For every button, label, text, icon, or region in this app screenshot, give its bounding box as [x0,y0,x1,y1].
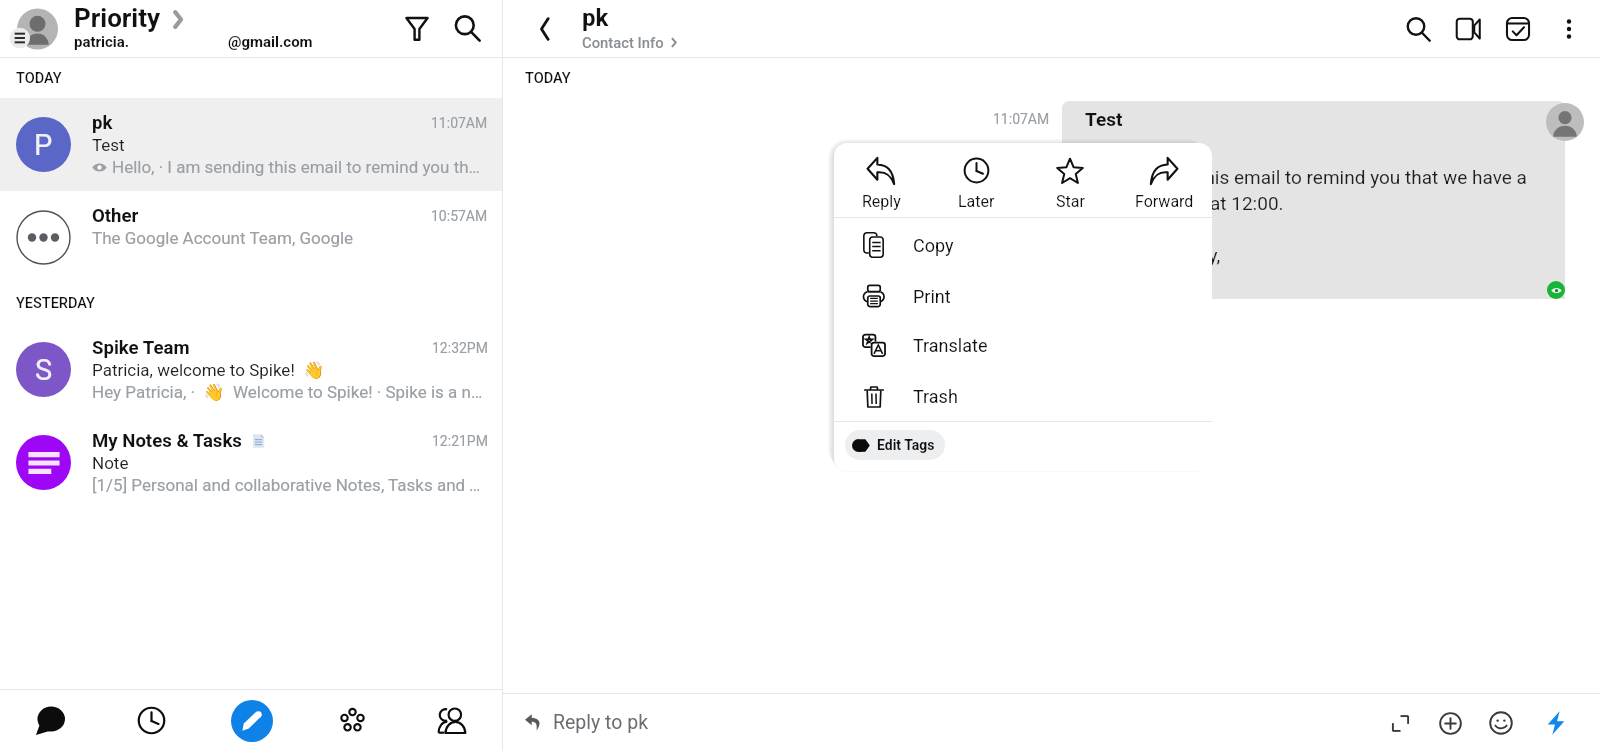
button[interactable]: Snoozed [101,690,202,751]
staticText: Test [92,135,125,155]
staticText: Spike Team [92,337,190,359]
staticText: S [35,353,53,387]
button[interactable]: Priority [74,3,185,33]
staticText: Hey Patricia, · 👋 Welcome to Spike! · Sp… [92,382,488,402]
staticText: 12:32PM [432,340,488,356]
button[interactable]: Edit Tags [845,430,945,460]
button[interactable]: Translate [834,320,1212,370]
staticText: Priority [74,3,161,33]
staticText: Hello, [1085,140,1133,162]
staticText: pk [92,112,113,134]
staticText: Trash [913,386,958,407]
staticText: Later [958,192,995,211]
staticText: P [34,128,53,162]
staticText: Reply [862,192,901,211]
staticText: TODAY [525,70,571,87]
button[interactable]: Send [1539,706,1573,740]
staticText: Forward [1135,192,1194,211]
staticText: [1/5] Personal and collaborative Notes, … [92,475,488,495]
staticText: Contact Info [582,34,664,51]
button[interactable]: My Notes & Tasks [0,416,502,509]
button[interactable]: Search [1401,12,1435,46]
staticText: Patricia, welcome to Spike! 👋 [92,360,325,380]
staticText: Star [1056,192,1085,211]
button[interactable]: Attach [1433,706,1467,740]
staticText: Copy [913,235,954,256]
button[interactable]: Test [1062,101,1565,299]
button[interactable]: Video call [1451,12,1485,46]
button[interactable]: Groups [302,690,402,751]
staticText: Edit Tags [877,437,935,453]
button[interactable]: Later [936,149,1016,211]
button[interactable]: P [0,98,502,191]
staticText: TODAY [16,70,62,87]
staticText: 12:21PM [432,433,488,449]
button[interactable]: Reply [841,149,921,211]
button[interactable]: Compose [231,700,273,742]
button[interactable]: S [0,323,502,416]
staticText: My Notes & Tasks [92,430,242,452]
button[interactable]: Filter [396,7,438,49]
staticText: Test [1085,108,1123,130]
button[interactable]: Emoji [1484,706,1518,740]
button[interactable]: Back [527,11,563,47]
staticText: YESTERDAY [16,295,95,312]
button[interactable]: Other [0,191,502,284]
button[interactable]: Expand [1383,706,1417,740]
staticText: Other [92,205,139,227]
button[interactable]: pk [582,4,678,51]
button[interactable]: Copy [834,220,1212,270]
staticText: 10:57AM [431,208,488,224]
button[interactable]: Chats [0,690,101,751]
staticText: I am sending this email to remind you th… [1085,166,1527,188]
staticText: Translate [913,335,988,356]
button[interactable]: Mark as done [1501,12,1535,46]
staticText: Have a nice day, [1085,244,1221,266]
button[interactable]: Reply to pk [525,694,649,751]
button[interactable]: More options [1552,12,1586,46]
staticText: 11:07AM [431,115,488,131]
button[interactable]: Print [834,271,1212,321]
staticText: patricia. [74,33,130,51]
staticText: pk [582,4,609,32]
staticText: The Google Account Team, Google [92,228,354,248]
button[interactable]: Trash [834,371,1212,421]
staticText: 11:07AM [993,111,1050,127]
staticText: Hello, · I am sending this email to remi… [112,157,488,177]
button[interactable]: People [402,690,502,751]
staticText: @gmail.com [228,33,313,51]
button[interactable]: Search [446,7,488,49]
staticText: Print [913,286,951,307]
button[interactable]: Account menu [8,4,58,54]
button[interactable]: Star [1030,149,1110,211]
staticText: Note [92,453,129,473]
staticText: meeting today at 12:00. [1085,192,1284,214]
button[interactable]: Forward [1124,149,1204,211]
staticText: Reply to pk [553,711,649,734]
